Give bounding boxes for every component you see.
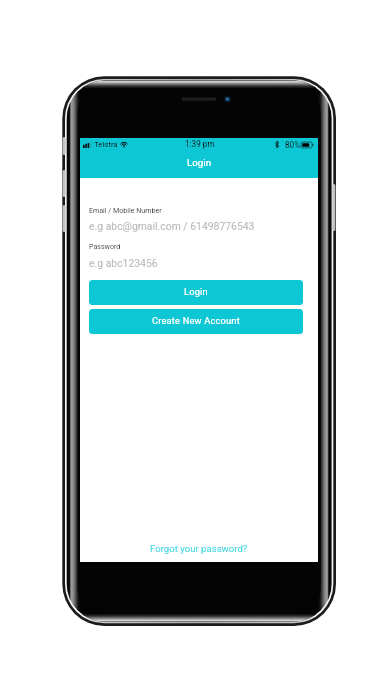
staticText: Create New Account xyxy=(152,315,240,326)
staticText: Password xyxy=(89,242,121,250)
staticText: Email / Mobile Number xyxy=(89,206,162,214)
staticText: Telstra xyxy=(94,140,118,149)
staticText: Login xyxy=(184,286,208,297)
button[interactable]: Login xyxy=(89,280,303,305)
button[interactable]: Create New Account xyxy=(89,309,303,334)
staticText: e.g abc123456 xyxy=(89,257,158,269)
staticText: e.g abc@gmail.com / 61498776543 xyxy=(89,220,255,232)
staticText: 1:39 pm xyxy=(185,139,215,149)
staticText: Login xyxy=(187,157,212,168)
button[interactable]: Forgot your password? xyxy=(138,539,260,558)
staticText: 80% xyxy=(285,140,301,150)
staticText: Forgot your password? xyxy=(150,543,248,554)
